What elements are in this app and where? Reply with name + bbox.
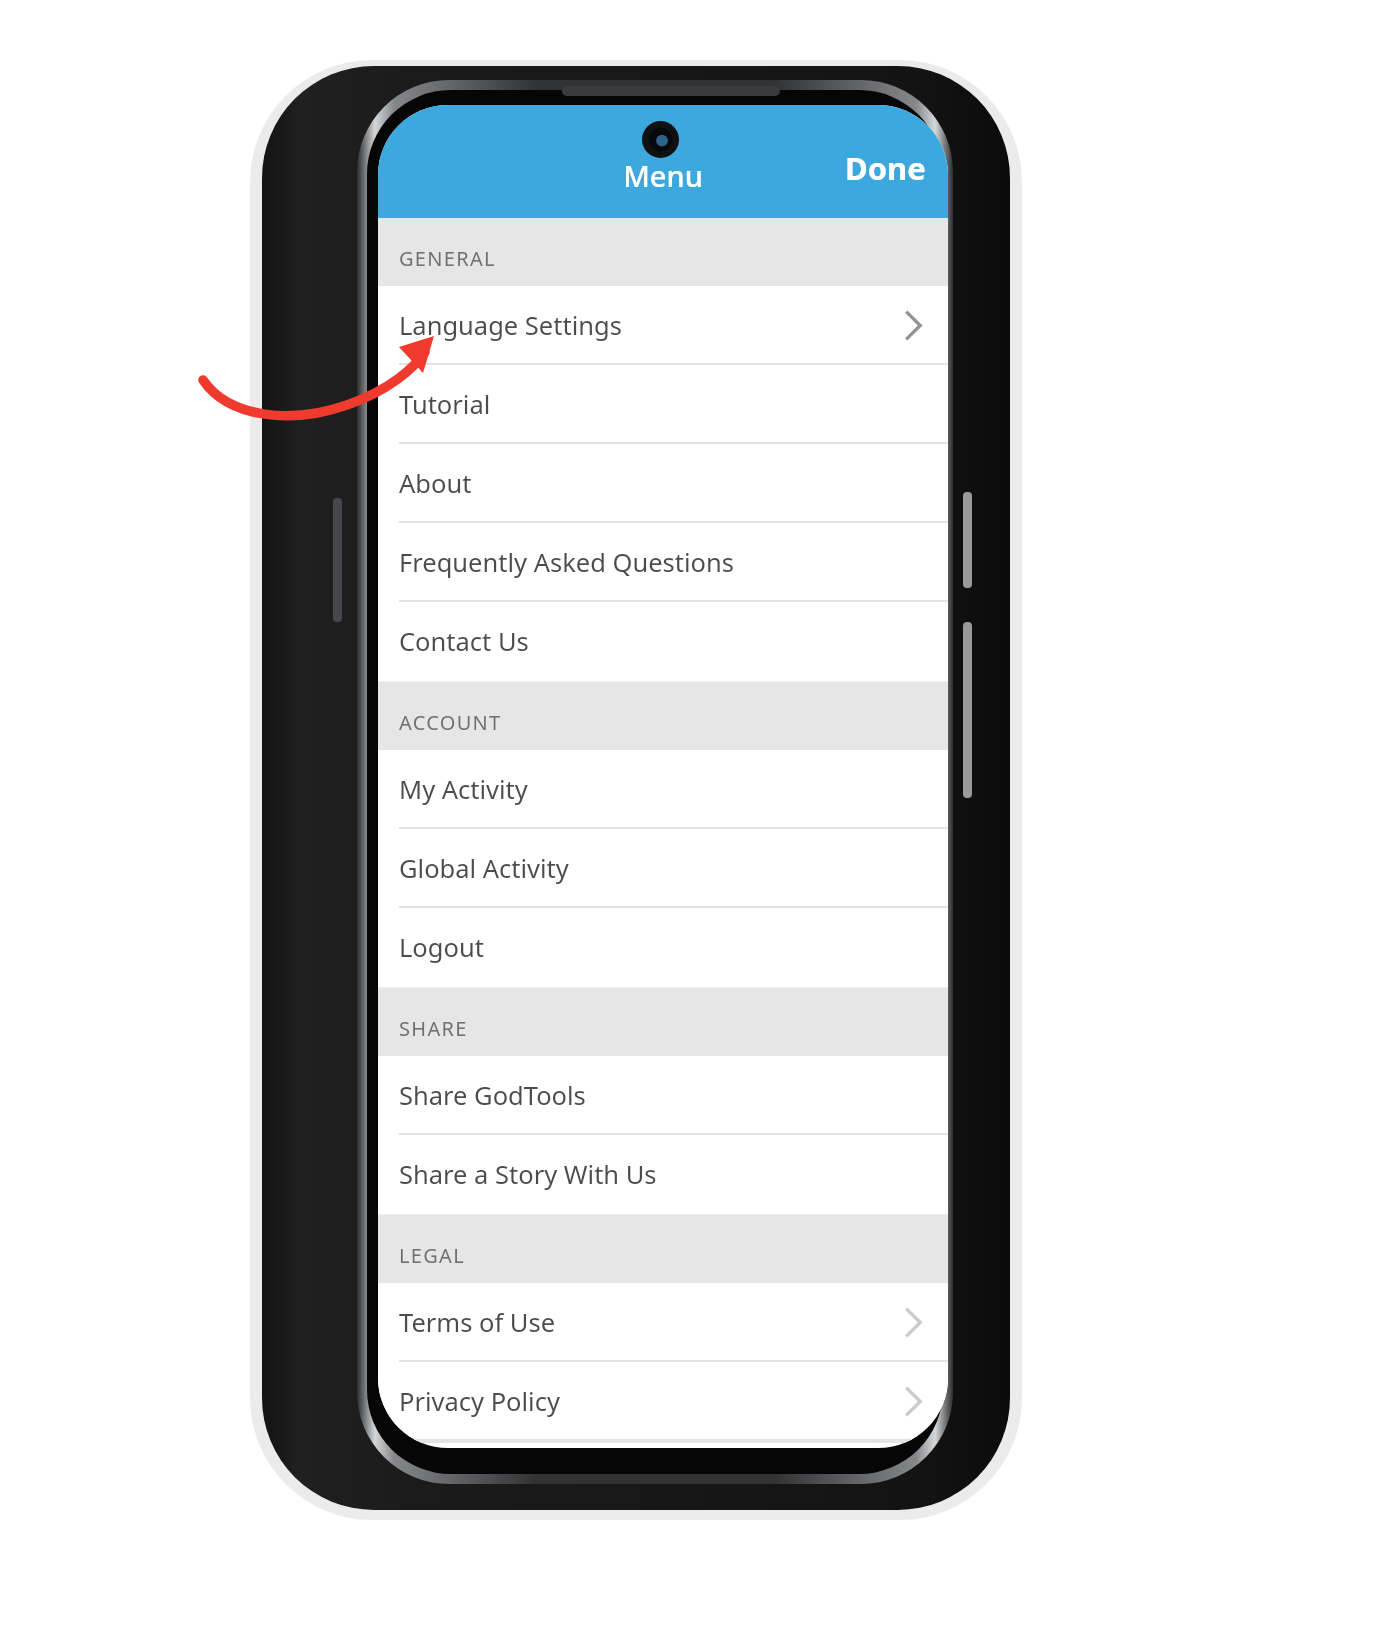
other: Open Language Settings <box>903 309 923 342</box>
button[interactable]: Share GodTools <box>378 1056 948 1135</box>
button[interactable]: Contact Us <box>378 602 948 681</box>
staticText: Privacy Policy <box>399 1384 560 1419</box>
button[interactable]: Global Activity <box>378 829 948 908</box>
staticText: Menu <box>623 156 703 195</box>
button[interactable]: My Activity <box>378 750 948 829</box>
button[interactable]: Privacy Policy <box>378 1362 948 1441</box>
button[interactable]: Logout <box>378 908 948 987</box>
staticText: Share GodTools <box>399 1078 586 1113</box>
staticText: Tutorial <box>399 387 491 422</box>
staticText: SHARE <box>399 1015 468 1042</box>
staticText: Done <box>845 147 926 189</box>
button[interactable]: Done <box>823 144 948 192</box>
other: Open Terms of Use <box>903 1306 923 1339</box>
button[interactable]: About <box>378 444 948 523</box>
staticText: Language Settings <box>399 308 622 343</box>
staticText: About <box>399 466 472 501</box>
staticText: Contact Us <box>399 624 529 659</box>
staticText: Logout <box>399 930 484 965</box>
other: Open Privacy Policy <box>903 1385 923 1418</box>
staticText: Global Activity <box>399 851 569 886</box>
staticText: LEGAL <box>399 1242 465 1269</box>
button[interactable]: Share a Story With Us <box>378 1135 948 1214</box>
button[interactable]: Language Settings <box>378 286 948 365</box>
button[interactable]: Frequently Asked Questions <box>378 523 948 602</box>
button[interactable]: Terms of Use <box>378 1283 948 1362</box>
staticText: ACCOUNT <box>399 709 502 736</box>
button[interactable]: Tutorial <box>378 365 948 444</box>
staticText: My Activity <box>399 772 528 807</box>
staticText: Share a Story With Us <box>399 1157 657 1192</box>
staticText: Frequently Asked Questions <box>399 545 734 580</box>
staticText: GENERAL <box>399 245 496 272</box>
staticText: Terms of Use <box>399 1305 556 1340</box>
